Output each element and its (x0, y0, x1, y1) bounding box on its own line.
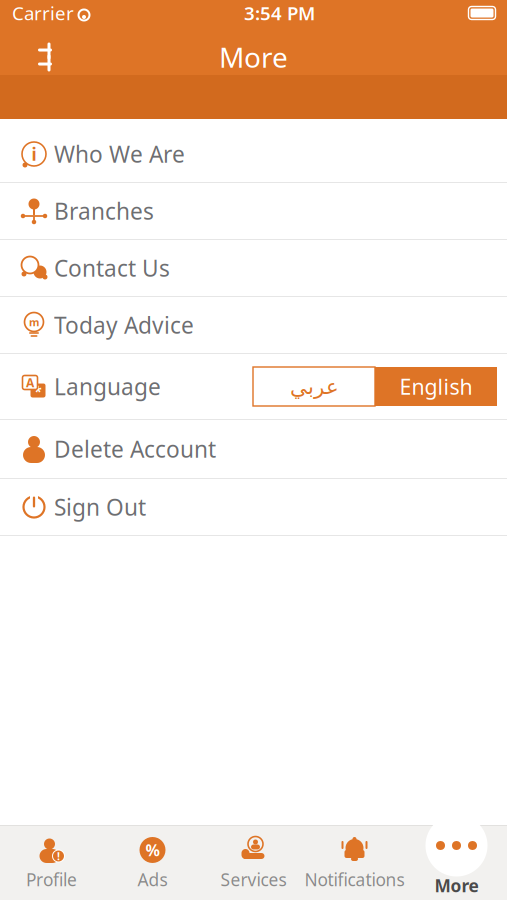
staticText: عربي (289, 374, 338, 399)
staticText: * (34, 383, 41, 400)
staticText: Notifications (304, 868, 404, 891)
staticText: % (145, 839, 159, 861)
staticText: Today Advice (54, 310, 194, 340)
staticText: Branches (54, 196, 154, 226)
button[interactable]: i (0, 126, 507, 183)
staticText: English (399, 372, 472, 401)
button[interactable]: More (406, 811, 507, 897)
staticText: Carrier (12, 1, 74, 25)
staticText: ! (57, 849, 60, 863)
staticText: Who We Are (54, 139, 185, 169)
staticText: m (29, 315, 39, 329)
staticText: Delete Account (54, 434, 216, 464)
staticText: Profile (26, 868, 77, 891)
button[interactable]: Delete Account (0, 420, 507, 479)
staticText: Ads (137, 868, 167, 891)
button[interactable]: % (102, 826, 203, 900)
button[interactable]: Notifications (304, 826, 405, 900)
staticText: 3:54 PM (244, 1, 315, 25)
button[interactable]: Branches (0, 183, 507, 240)
button[interactable]: عربي (253, 367, 375, 406)
button[interactable]: Back (26, 34, 72, 80)
staticText: Contact Us (54, 253, 170, 283)
staticText: More (434, 874, 478, 897)
button[interactable]: m (0, 297, 507, 354)
staticText: A (26, 374, 34, 390)
button[interactable]: Contact Us (0, 240, 507, 297)
button[interactable]: Services (203, 826, 304, 900)
staticText: i (31, 142, 36, 165)
button[interactable]: Sign Out (0, 479, 507, 536)
button[interactable]: English (375, 367, 497, 406)
staticText: More (219, 38, 288, 76)
staticText: Services (220, 868, 286, 891)
button[interactable]: ! (1, 826, 102, 900)
staticText: Language (54, 371, 161, 401)
staticText: Sign Out (54, 492, 146, 522)
